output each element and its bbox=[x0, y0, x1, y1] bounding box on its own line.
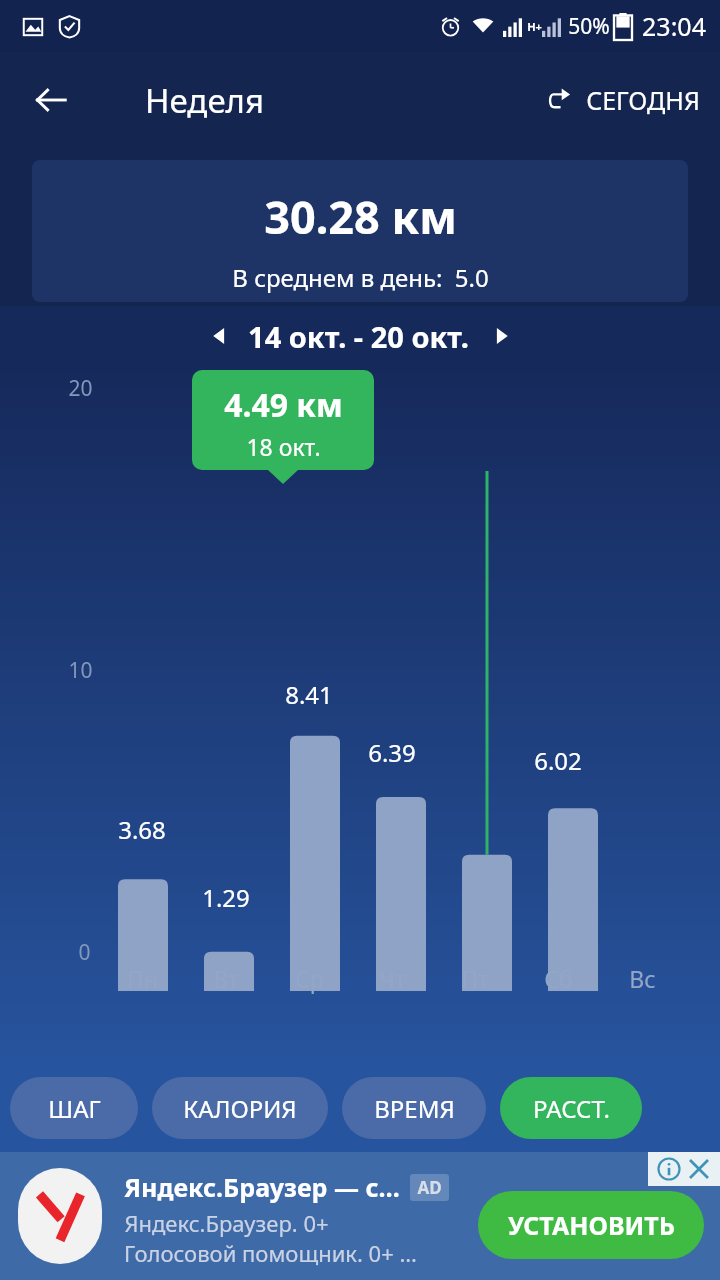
staticText: Чт bbox=[379, 963, 406, 994]
button[interactable]: ШАГ bbox=[10, 1077, 138, 1139]
staticText: 23:04 bbox=[642, 9, 706, 43]
staticText: Пт bbox=[461, 963, 489, 994]
staticText: В среднем в день: 5.0 bbox=[232, 261, 489, 294]
staticText: Яндекс.Браузер — с… bbox=[124, 1170, 400, 1204]
staticText: 3.68 bbox=[118, 813, 166, 846]
staticText: 20 bbox=[68, 374, 93, 403]
button[interactable]: Next week bbox=[479, 313, 525, 359]
staticText: 6.39 bbox=[368, 736, 416, 769]
button[interactable]: Ad info bbox=[654, 1154, 684, 1184]
staticText: КАЛОРИЯ bbox=[183, 1092, 297, 1125]
staticText: 4.49 км bbox=[224, 383, 343, 427]
staticText: 6.02 bbox=[534, 744, 582, 777]
staticText: ШАГ bbox=[48, 1092, 101, 1125]
staticText: ВРЕМЯ bbox=[374, 1092, 455, 1125]
button[interactable]: 30.28 км bbox=[32, 160, 688, 302]
staticText: H+ bbox=[527, 19, 542, 34]
button[interactable]: Previous week bbox=[196, 313, 242, 359]
staticText: Ср bbox=[295, 963, 324, 994]
staticText: 50% bbox=[568, 12, 610, 41]
staticText: Вт bbox=[213, 963, 239, 994]
button[interactable]: СЕГОДНЯ bbox=[540, 75, 706, 125]
staticText: 14 окт. - 20 окт. bbox=[248, 317, 469, 356]
button[interactable]: КАЛОРИЯ bbox=[152, 1077, 328, 1139]
staticText: РАССТ. bbox=[533, 1092, 610, 1125]
button[interactable]: РАССТ. bbox=[500, 1077, 642, 1139]
staticText: СЕГОДНЯ bbox=[586, 83, 700, 117]
button[interactable]: Яндекс.Браузер — с… bbox=[0, 1152, 720, 1280]
staticText: 18 окт. bbox=[246, 431, 321, 462]
button[interactable]: Back bbox=[22, 71, 80, 129]
button[interactable]: ВРЕМЯ bbox=[342, 1077, 486, 1139]
staticText: Неделя bbox=[145, 78, 264, 123]
staticText: 1.29 bbox=[202, 881, 250, 914]
staticText: Яндекс.Браузер. 0+ bbox=[124, 1208, 329, 1238]
button[interactable]: Close ad bbox=[684, 1154, 714, 1184]
staticText: AD bbox=[417, 1176, 442, 1199]
button[interactable]: 4.49 км bbox=[192, 370, 374, 470]
staticText: УСТАНОВИТЬ bbox=[508, 1208, 675, 1242]
button[interactable]: УСТАНОВИТЬ bbox=[478, 1191, 704, 1259]
staticText: 30.28 км bbox=[264, 186, 457, 247]
staticText: 10 bbox=[68, 656, 93, 685]
staticText: 8.41 bbox=[285, 678, 333, 711]
staticText: Голосовой помощник. 0+ … bbox=[124, 1238, 417, 1268]
staticText: 0 bbox=[78, 938, 91, 967]
staticText: Вс bbox=[629, 963, 656, 994]
staticText: Сб bbox=[544, 963, 573, 994]
staticText: Пн bbox=[127, 963, 158, 994]
